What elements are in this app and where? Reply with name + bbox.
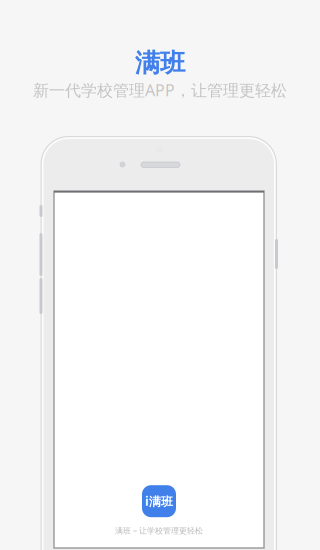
staticText: 满班 – 让学校管理更轻松 [115, 525, 203, 536]
staticText: i满班 [145, 493, 173, 509]
button[interactable]: i满班 [55, 483, 263, 538]
staticText: 满班 [135, 47, 185, 78]
staticText: 新一代学校管理APP，让管理更轻松 [33, 79, 287, 101]
